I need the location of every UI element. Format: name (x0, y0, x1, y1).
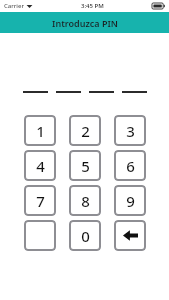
staticText: 7 (36, 191, 45, 211)
staticText: 1 (36, 121, 45, 141)
staticText: 5 (81, 156, 90, 176)
staticText: 2 (81, 121, 90, 141)
button[interactable]: Backspace (114, 220, 146, 251)
staticText: 3 (126, 121, 135, 141)
staticText: Carrier (4, 2, 24, 10)
button[interactable] (24, 220, 56, 251)
staticText: 6 (126, 156, 135, 176)
staticText: 9 (126, 191, 135, 211)
button[interactable]: 9 (114, 185, 146, 216)
button[interactable]: 1 (24, 115, 56, 146)
button[interactable]: 7 (24, 185, 56, 216)
staticText: 8 (81, 191, 90, 211)
staticText: 0 (81, 226, 90, 246)
button[interactable]: 3 (114, 115, 146, 146)
button[interactable]: 5 (69, 150, 101, 181)
staticText: Introduzca PIN (52, 17, 118, 29)
button[interactable]: 4 (24, 150, 56, 181)
button[interactable]: 0 (69, 220, 101, 251)
button[interactable]: 6 (114, 150, 146, 181)
staticText: 3:45 PM (81, 2, 104, 10)
button[interactable]: 8 (69, 185, 101, 216)
button[interactable]: 2 (69, 115, 101, 146)
staticText: 4 (36, 156, 45, 176)
